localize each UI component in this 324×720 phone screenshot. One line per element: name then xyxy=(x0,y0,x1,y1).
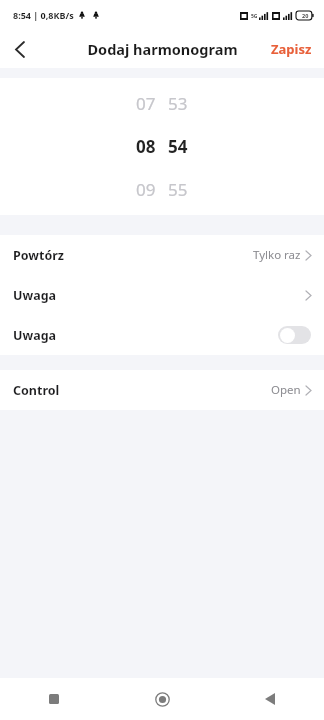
staticText: Zapisz xyxy=(271,40,312,58)
staticText: 53 xyxy=(168,92,188,115)
button[interactable]: Control xyxy=(0,370,324,410)
staticText: Open xyxy=(271,382,301,398)
button[interactable]: Zapisz xyxy=(259,32,324,66)
staticText: 08 xyxy=(136,135,156,158)
staticText: Uwaga xyxy=(13,327,57,344)
button[interactable]: Powtórz xyxy=(0,235,324,275)
staticText: Powtórz xyxy=(13,247,65,264)
staticText: Uwaga xyxy=(13,287,57,304)
staticText: 55 xyxy=(168,178,188,201)
button[interactable]: Back xyxy=(0,30,40,68)
button[interactable]: Uwaga xyxy=(0,275,324,315)
staticText: Control xyxy=(13,382,60,399)
staticText: 09 xyxy=(136,178,156,201)
staticText: 8:54 | 0,8KB/s xyxy=(13,9,74,21)
staticText: 54 xyxy=(168,135,188,158)
button[interactable]: Home xyxy=(108,678,216,720)
button[interactable]: Toggle xyxy=(278,326,311,344)
staticText: 5G xyxy=(251,13,258,20)
staticText: 20 xyxy=(302,12,309,19)
staticText: Tylko raz xyxy=(253,247,301,263)
staticText: Dodaj harmonogram xyxy=(87,39,238,59)
button[interactable]: Back xyxy=(216,678,324,720)
button[interactable]: Uwaga xyxy=(0,315,324,355)
staticText: 07 xyxy=(136,92,156,115)
button[interactable]: Recents xyxy=(0,678,108,720)
